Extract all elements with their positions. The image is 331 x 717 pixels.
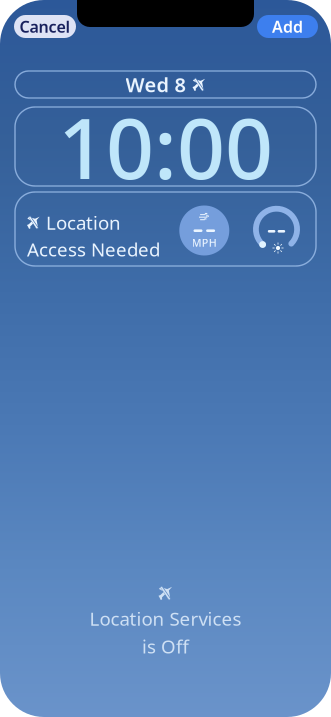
staticText: is Off — [142, 634, 189, 659]
button[interactable]: Cancel — [14, 15, 76, 38]
staticText: Wed 8 — [125, 71, 185, 98]
staticText: Location Services — [89, 606, 241, 631]
staticText: Access Needed — [27, 237, 160, 262]
staticText: 10:00 — [58, 91, 273, 202]
button[interactable]: Add — [257, 15, 318, 38]
staticText: Cancel — [19, 16, 70, 37]
staticText: MPH — [192, 235, 217, 250]
staticText: Add — [272, 16, 303, 37]
staticText: Location — [46, 210, 121, 235]
